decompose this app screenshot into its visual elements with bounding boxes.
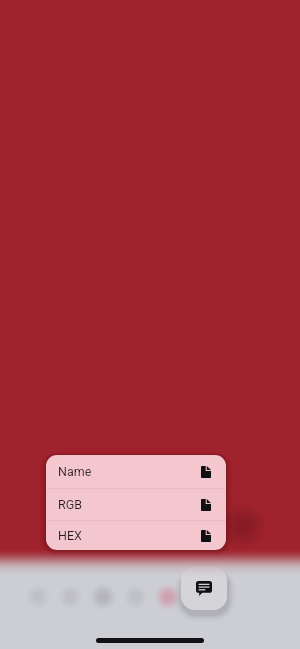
- button[interactable]: RGB: [46, 489, 226, 520]
- button[interactable]: Messages: [181, 566, 227, 610]
- button[interactable]: Favourites: [152, 581, 184, 613]
- button[interactable]: Camera: [87, 581, 119, 613]
- button[interactable]: Image: [55, 581, 87, 613]
- button[interactable]: HEX: [46, 521, 226, 550]
- staticText: Name: [58, 464, 92, 479]
- button[interactable]: Gradient: [120, 581, 152, 613]
- button[interactable]: Name: [46, 455, 226, 488]
- button[interactable]: Palette: [22, 581, 54, 613]
- staticText: HEX: [58, 528, 82, 543]
- staticText: RGB: [58, 497, 83, 512]
